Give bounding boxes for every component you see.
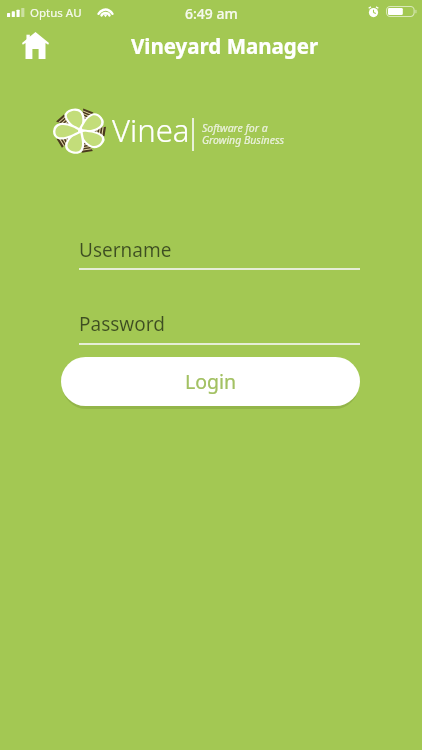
- button[interactable]: Login: [61, 357, 360, 406]
- button[interactable]: Home: [15, 24, 55, 64]
- staticText: Vinea: [112, 109, 190, 151]
- staticText: Software for a Growing Business: [202, 121, 284, 147]
- staticText: Vineyard Manager: [131, 32, 319, 60]
- staticText: Optus AU: [30, 5, 82, 21]
- staticText: Password: [79, 311, 165, 337]
- button[interactable]: Username: [79, 237, 360, 270]
- button[interactable]: Password: [79, 311, 360, 345]
- staticText: 6:49 am: [185, 4, 238, 23]
- staticText: Login: [185, 368, 237, 395]
- staticText: Username: [79, 237, 172, 263]
